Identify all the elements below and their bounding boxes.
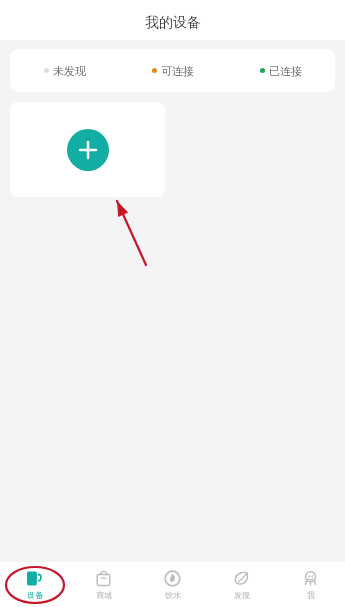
staticText: 饮水 <box>165 590 181 600</box>
button[interactable]: 设备 <box>0 562 69 607</box>
staticText: 未发现 <box>53 64 86 78</box>
button[interactable]: 饮水 <box>138 562 207 607</box>
staticText: 可连接 <box>161 64 194 78</box>
button[interactable]: 已连接 <box>227 49 335 92</box>
button[interactable]: 发现 <box>207 562 276 607</box>
button[interactable]: 商城 <box>69 562 138 607</box>
button[interactable]: 未发现 <box>10 49 335 92</box>
staticText: 设备 <box>27 590 43 600</box>
staticText: 已连接 <box>269 64 302 78</box>
staticText: 我的设备 <box>145 14 201 32</box>
staticText: 我 <box>307 590 315 600</box>
button[interactable]: 添加设备 <box>10 102 165 197</box>
button[interactable]: 我 <box>276 562 345 607</box>
staticText: 发现 <box>234 590 250 600</box>
button[interactable]: 可连接 <box>119 49 227 92</box>
staticText: 商城 <box>96 590 112 600</box>
button[interactable]: 未发现 <box>10 49 119 92</box>
